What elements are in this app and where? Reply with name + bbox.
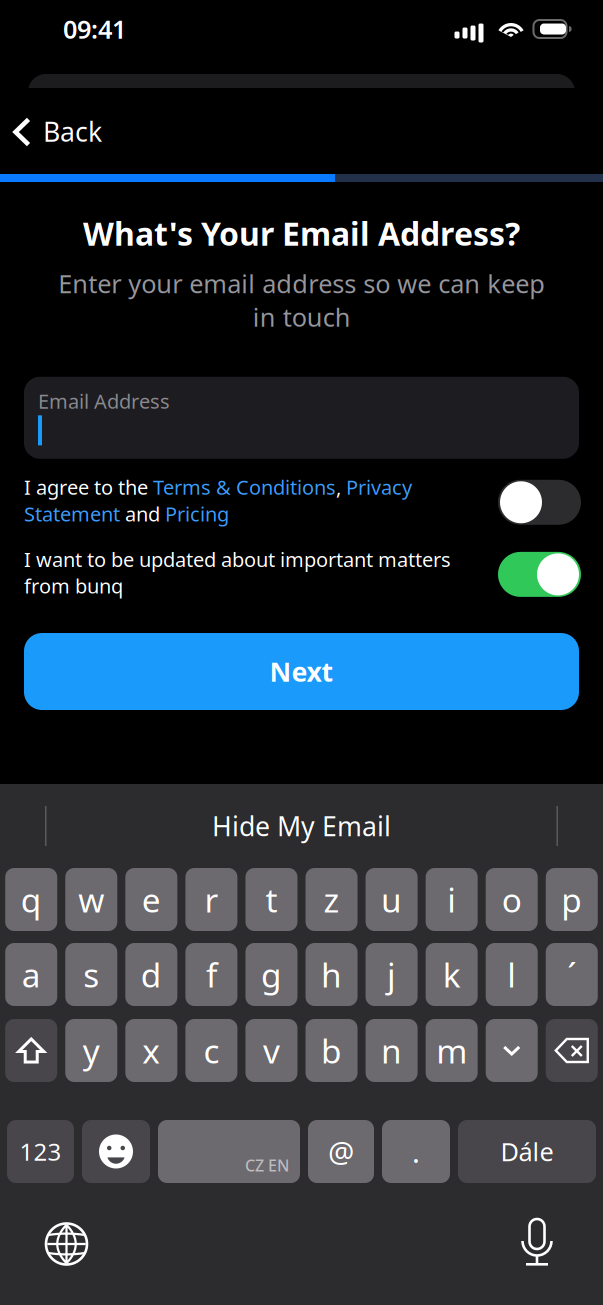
button[interactable]: g bbox=[245, 943, 297, 1006]
staticText: m bbox=[436, 1028, 467, 1073]
button[interactable]: Shift bbox=[5, 1019, 57, 1082]
staticText: I want to be updated about important mat… bbox=[24, 546, 451, 599]
button[interactable]: i bbox=[426, 868, 478, 931]
button[interactable]: k bbox=[426, 943, 478, 1006]
button[interactable]: Space bbox=[158, 1120, 300, 1183]
button[interactable]: Receive updates, on bbox=[498, 552, 581, 597]
button[interactable]: . bbox=[382, 1120, 450, 1183]
staticText: i bbox=[447, 877, 456, 922]
staticText: l bbox=[507, 952, 516, 997]
staticText: f bbox=[206, 952, 217, 997]
button[interactable]: o bbox=[486, 868, 538, 931]
staticText: q bbox=[21, 877, 42, 922]
button[interactable]: w bbox=[65, 868, 117, 931]
staticText: x bbox=[142, 1028, 160, 1073]
button[interactable]: ´ bbox=[546, 943, 598, 1006]
button[interactable]: y bbox=[65, 1019, 117, 1082]
button[interactable]: r bbox=[185, 868, 237, 931]
button[interactable]: j bbox=[366, 943, 418, 1006]
staticText: . bbox=[412, 1132, 420, 1171]
staticText: I agree to the Terms & Conditions, Priva… bbox=[24, 474, 412, 527]
button[interactable]: e bbox=[125, 868, 177, 931]
button[interactable]: b bbox=[305, 1019, 357, 1082]
staticText: What's Your Email Address? bbox=[83, 212, 520, 254]
button[interactable]: m bbox=[426, 1019, 478, 1082]
staticText: Email Address bbox=[38, 388, 170, 414]
staticText: w bbox=[78, 877, 104, 922]
staticText: 09:41 bbox=[63, 12, 126, 46]
staticText: a bbox=[22, 952, 41, 997]
staticText: c bbox=[203, 1028, 219, 1073]
staticText: n bbox=[381, 1028, 402, 1073]
button[interactable]: l bbox=[486, 943, 538, 1006]
staticText: v bbox=[263, 1028, 280, 1073]
button[interactable]: n bbox=[366, 1019, 418, 1082]
button[interactable]: v bbox=[245, 1019, 297, 1082]
staticText: t bbox=[265, 877, 277, 922]
button[interactable]: h bbox=[305, 943, 357, 1006]
button[interactable]: f bbox=[185, 943, 237, 1006]
staticText: k bbox=[443, 952, 461, 997]
button[interactable]: d bbox=[125, 943, 177, 1006]
staticText: g bbox=[261, 952, 282, 997]
staticText: r bbox=[204, 877, 218, 922]
button[interactable]: t bbox=[245, 868, 297, 931]
button[interactable]: z bbox=[305, 868, 357, 931]
staticText: u bbox=[381, 877, 402, 922]
button[interactable]: p bbox=[546, 868, 598, 931]
staticText: o bbox=[502, 877, 522, 922]
button[interactable]: @ bbox=[308, 1120, 374, 1183]
staticText: e bbox=[142, 877, 161, 922]
staticText: j bbox=[387, 952, 396, 997]
staticText: ´ bbox=[567, 952, 576, 997]
button[interactable]: Accents bbox=[486, 1019, 538, 1082]
button[interactable]: 123 bbox=[7, 1120, 74, 1183]
button[interactable]: Next bbox=[24, 633, 579, 710]
staticText: y bbox=[83, 1028, 100, 1073]
button[interactable]: Agree to terms, off bbox=[498, 480, 581, 525]
button[interactable]: x bbox=[125, 1019, 177, 1082]
staticText: s bbox=[83, 952, 99, 997]
staticText: z bbox=[323, 877, 339, 922]
button[interactable]: Emoji bbox=[82, 1120, 150, 1183]
button[interactable]: Next keyboard bbox=[46, 1223, 87, 1264]
staticText: Enter your email address so we can keep … bbox=[58, 266, 545, 334]
staticText: b bbox=[321, 1028, 342, 1073]
staticText: Hide My Email bbox=[212, 808, 391, 844]
button[interactable]: Delete bbox=[546, 1019, 598, 1082]
button[interactable]: s bbox=[65, 943, 117, 1006]
button[interactable]: Dále bbox=[458, 1120, 596, 1183]
staticText: CZ EN bbox=[245, 1155, 289, 1176]
button[interactable]: Hide My Email bbox=[192, 798, 411, 854]
staticText: Back bbox=[43, 114, 102, 149]
staticText: Dále bbox=[500, 1135, 553, 1168]
button[interactable]: q bbox=[5, 868, 57, 931]
button[interactable]: Back bbox=[0, 108, 603, 156]
staticText: h bbox=[321, 952, 342, 997]
button[interactable]: a bbox=[5, 943, 57, 1006]
button[interactable]: c bbox=[185, 1019, 237, 1082]
staticText: d bbox=[141, 952, 162, 997]
staticText: @ bbox=[328, 1132, 354, 1171]
staticText: Next bbox=[269, 654, 333, 689]
button[interactable]: u bbox=[366, 868, 418, 931]
staticText: 123 bbox=[19, 1136, 61, 1167]
staticText: p bbox=[561, 877, 582, 922]
button[interactable]: Dictate bbox=[522, 1216, 552, 1262]
